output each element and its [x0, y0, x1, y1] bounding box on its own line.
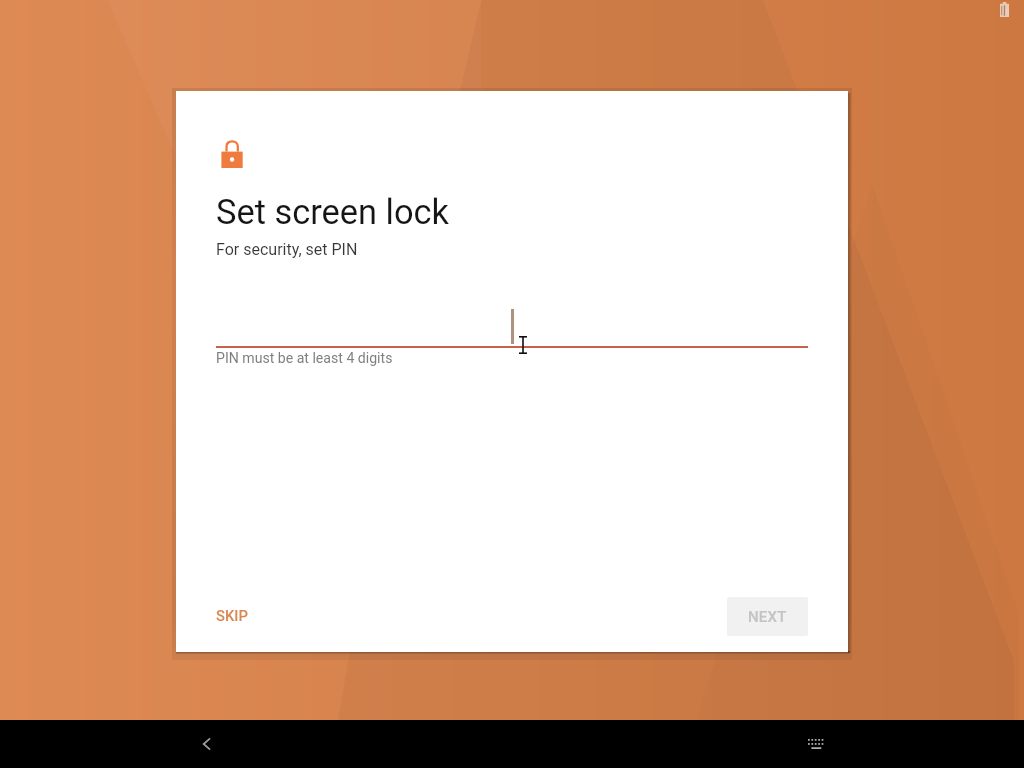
staticText: SKIP — [216, 607, 249, 624]
button[interactable]: PIN — [216, 298, 808, 348]
staticText: For security, set PIN — [216, 240, 358, 259]
staticText: NEXT — [748, 608, 787, 626]
button[interactable]: Back — [184, 721, 230, 767]
button[interactable]: SKIP — [204, 598, 261, 633]
button[interactable]: Show keyboard — [793, 721, 839, 767]
button[interactable]: NEXT — [727, 597, 808, 636]
staticText: PIN must be at least 4 digits — [216, 350, 393, 367]
staticText: Set screen lock — [216, 192, 449, 232]
